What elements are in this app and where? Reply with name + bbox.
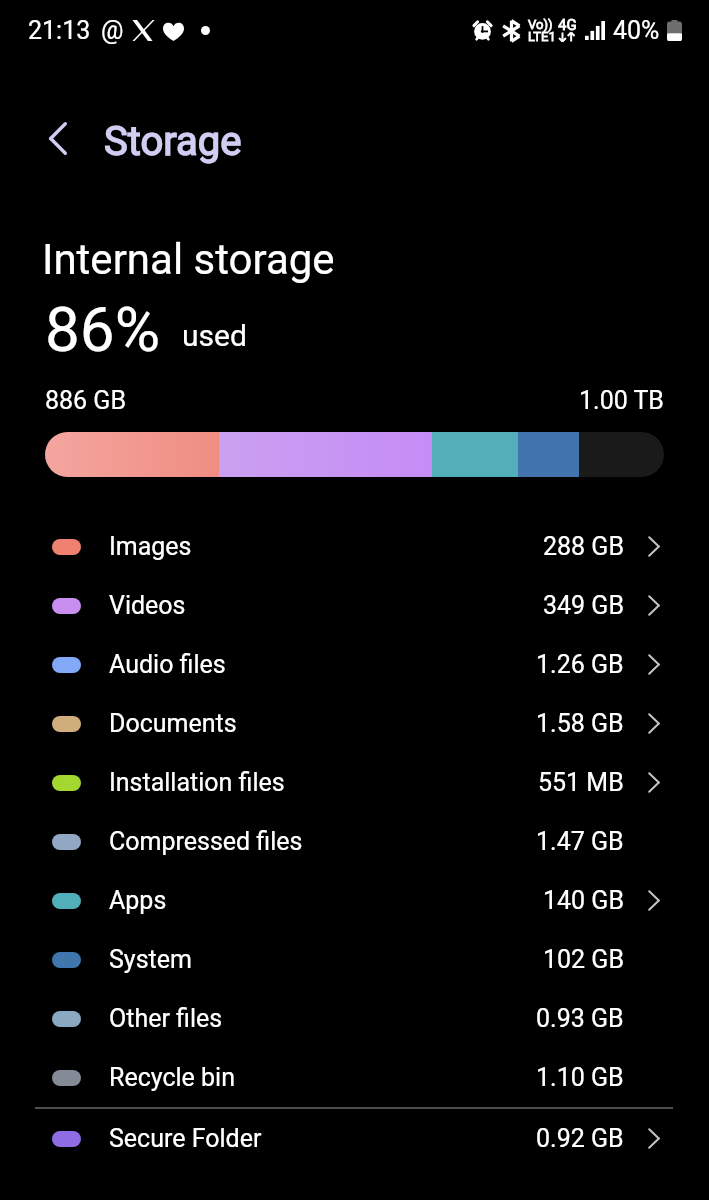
staticText: 40% xyxy=(613,16,660,45)
staticText: Installation files xyxy=(109,768,285,797)
staticText: Vo)) xyxy=(528,17,553,32)
staticText: 0.92 GB xyxy=(536,1124,624,1153)
staticText: 349 GB xyxy=(543,591,624,620)
staticText: 1.26 GB xyxy=(536,650,624,679)
staticText: 0.93 GB xyxy=(536,1004,624,1033)
staticText: 551 MB xyxy=(538,768,624,797)
staticText: 1.10 GB xyxy=(536,1063,624,1092)
staticText: Images xyxy=(109,532,192,561)
staticText: LTE1 xyxy=(528,29,556,44)
staticText: Secure Folder xyxy=(109,1124,262,1153)
button[interactable]: Back xyxy=(28,108,88,168)
staticText: Videos xyxy=(109,591,186,620)
staticText: Compressed files xyxy=(109,827,303,856)
staticText: 21:13 xyxy=(28,16,91,45)
button[interactable]: Recycle bin xyxy=(0,1048,709,1107)
staticText: System xyxy=(109,945,192,974)
staticText: used xyxy=(182,318,247,353)
button[interactable]: Other files xyxy=(0,989,709,1048)
staticText: Documents xyxy=(109,709,237,738)
button[interactable]: Installation files xyxy=(0,753,709,812)
button[interactable]: Documents xyxy=(0,694,709,753)
button[interactable]: System xyxy=(0,930,709,989)
button[interactable]: Audio files xyxy=(0,635,709,694)
staticText: 4G xyxy=(558,16,577,34)
staticText: Recycle bin xyxy=(109,1063,235,1092)
staticText: Audio files xyxy=(109,650,226,679)
button[interactable]: Apps xyxy=(0,871,709,930)
staticText: Internal storage xyxy=(42,235,335,284)
button[interactable]: Images xyxy=(0,517,709,576)
staticText: @ xyxy=(101,16,124,45)
staticText: Other files xyxy=(109,1004,223,1033)
staticText: 886 GB xyxy=(45,386,126,415)
staticText: 1.00 TB xyxy=(579,386,664,415)
button[interactable]: Compressed files xyxy=(0,812,709,871)
staticText: 102 GB xyxy=(543,945,624,974)
staticText: 1.47 GB xyxy=(536,827,624,856)
staticText: 288 GB xyxy=(543,532,624,561)
staticText: Apps xyxy=(109,886,167,915)
staticText: 86% xyxy=(45,293,161,366)
staticText: Storage xyxy=(104,118,242,165)
staticText: 140 GB xyxy=(543,886,624,915)
button[interactable]: Secure Folder xyxy=(0,1109,709,1168)
button[interactable]: Videos xyxy=(0,576,709,635)
staticText: 1.58 GB xyxy=(536,709,624,738)
